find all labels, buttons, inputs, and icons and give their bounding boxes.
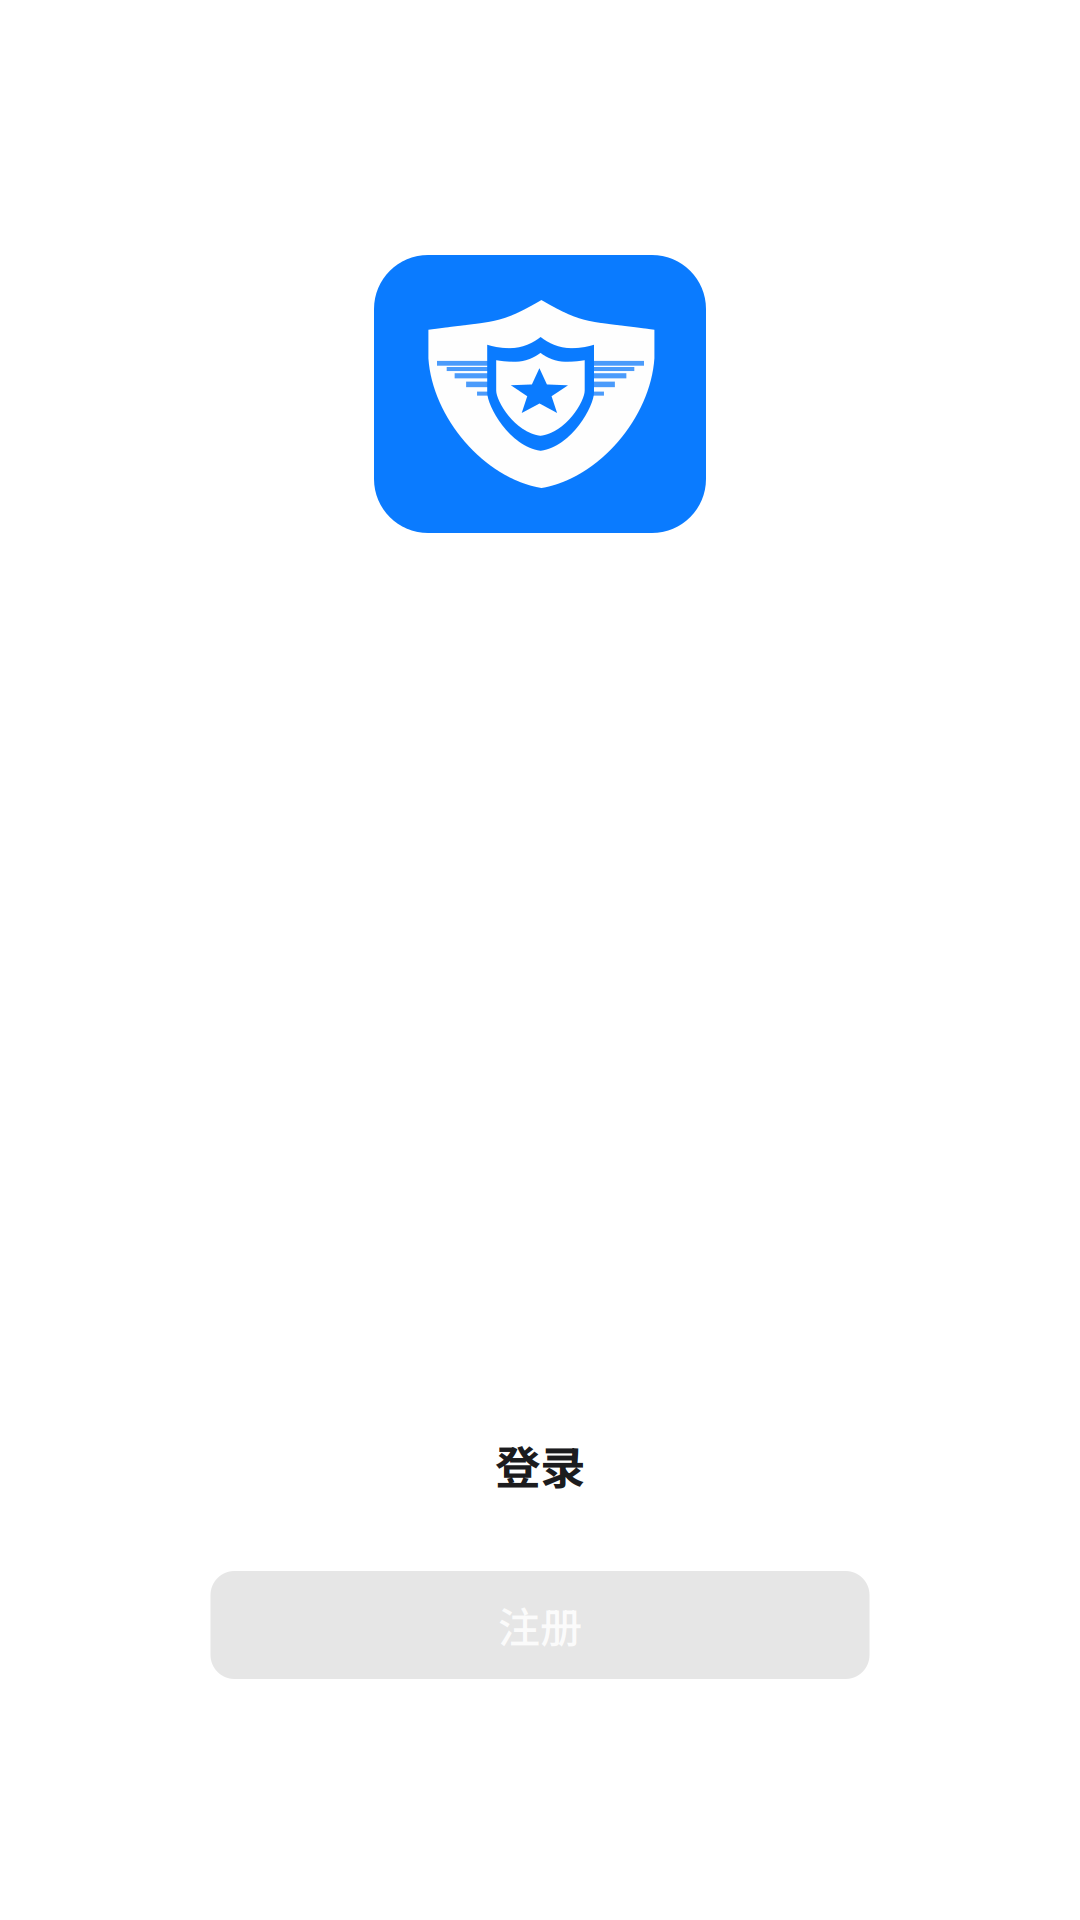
staticText: 注册 [498,1595,582,1655]
button[interactable]: 注册 [210,1571,869,1679]
button[interactable]: 登录 [495,1432,585,1498]
staticText: 登录 [495,1432,585,1498]
